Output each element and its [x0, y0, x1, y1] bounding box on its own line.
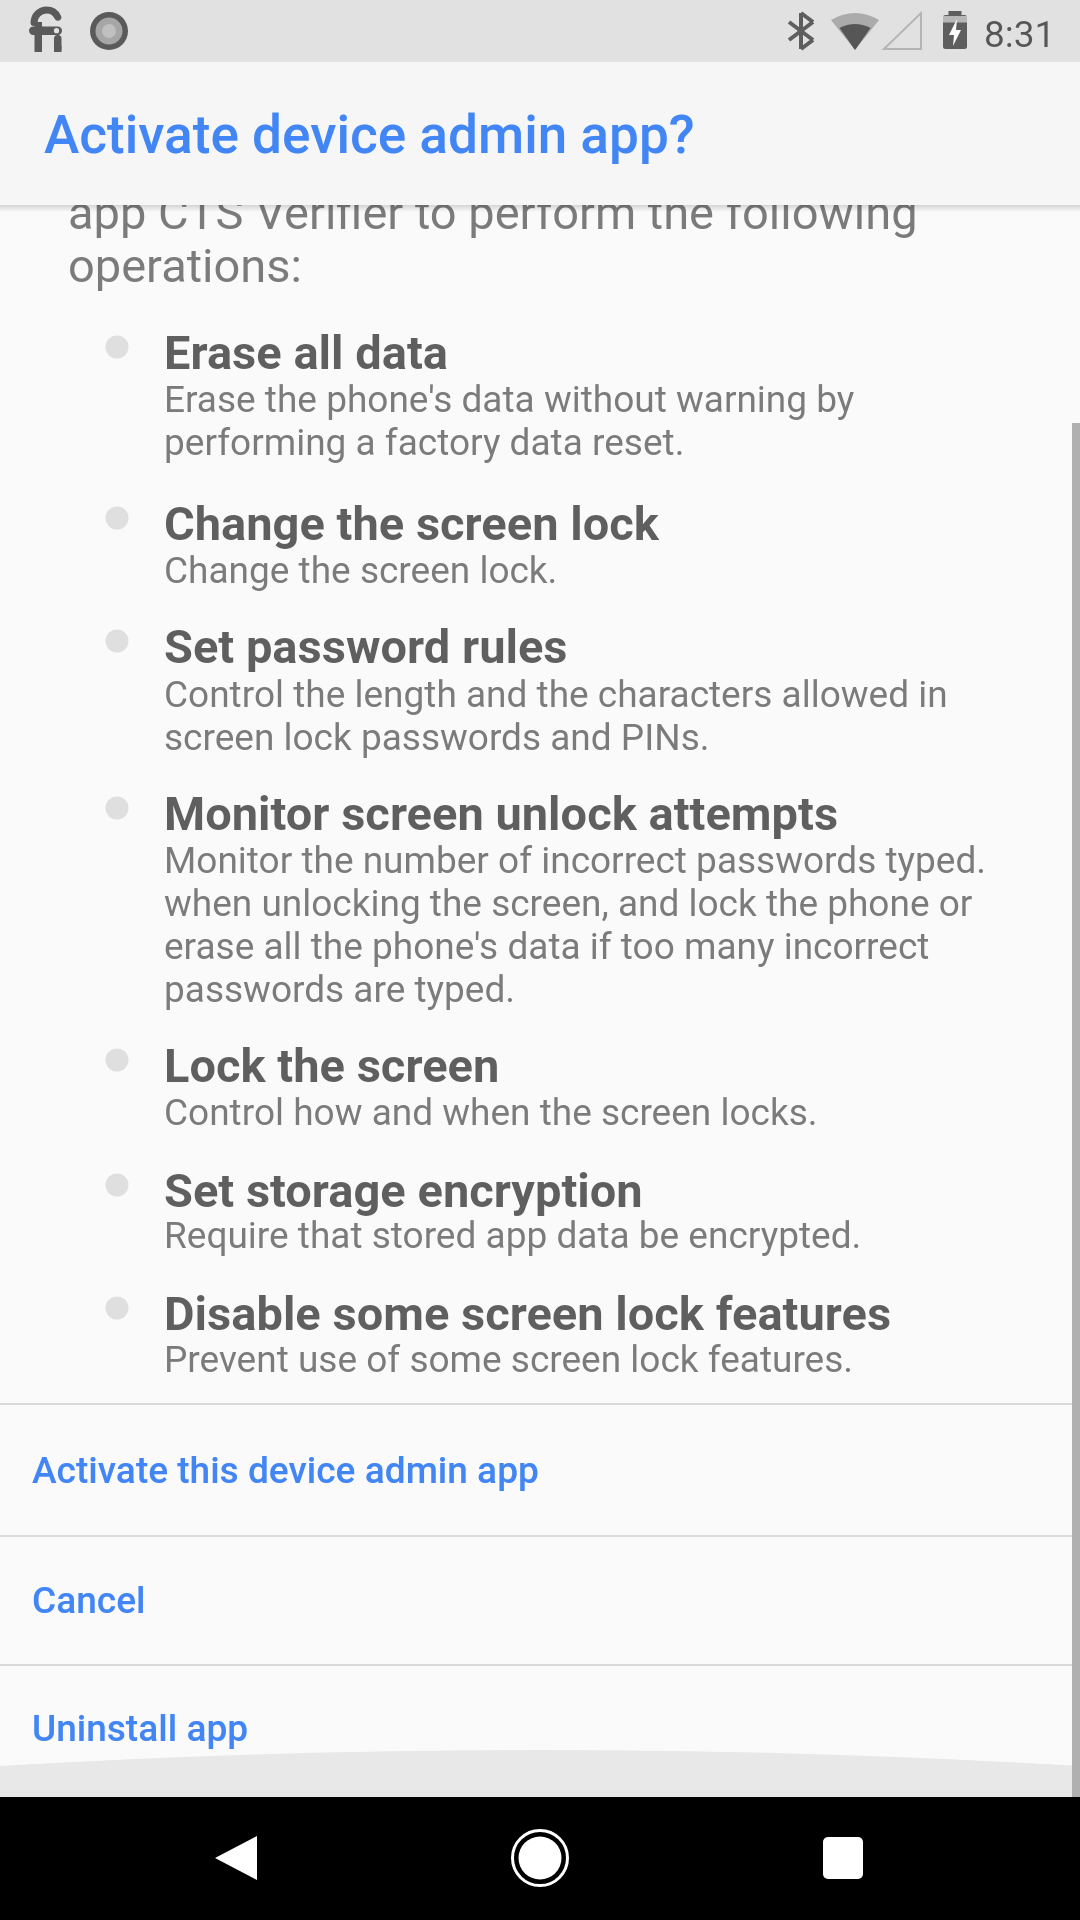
- button[interactable]: [180, 1812, 292, 1906]
- staticText: Activate this device admin app: [32, 1449, 539, 1492]
- button[interactable]: Uninstall app: [0, 1666, 1080, 1797]
- staticText: Prevent use of some screen lock features…: [164, 1338, 854, 1381]
- staticText: when unlocking the screen, and lock the …: [164, 882, 973, 925]
- staticText: Erase the phone's data without warning b…: [164, 378, 855, 421]
- staticText: Set storage encryption: [164, 1163, 643, 1218]
- staticText: app CTS Verifier to perform the followin…: [68, 185, 918, 240]
- staticText: Erase all data: [164, 325, 449, 380]
- staticText: Monitor screen unlock attempts: [164, 786, 839, 841]
- staticText: passwords are typed.: [164, 968, 516, 1011]
- staticText: Set password rules: [164, 619, 568, 674]
- staticText: Activate device admin app?: [44, 104, 695, 166]
- button[interactable]: [484, 1812, 596, 1906]
- staticText: Disable some screen lock features: [164, 1286, 892, 1341]
- staticText: Uninstall app: [32, 1707, 249, 1750]
- staticText: Monitor the number of incorrect password…: [164, 839, 987, 882]
- button[interactable]: Cancel: [0, 1537, 1080, 1664]
- staticText: Require that stored app data be encrypte…: [164, 1214, 862, 1257]
- staticText: Cancel: [32, 1579, 146, 1622]
- staticText: operations:: [68, 238, 302, 293]
- staticText: Change the screen lock: [164, 496, 659, 551]
- staticText: Change the screen lock.: [164, 549, 558, 592]
- staticText: erase all the phone's data if too many i…: [164, 925, 930, 968]
- staticText: Control the length and the characters al…: [164, 673, 948, 716]
- button[interactable]: [788, 1812, 900, 1906]
- staticText: Control how and when the screen locks.: [164, 1091, 818, 1134]
- staticText: 8:31: [984, 13, 1056, 56]
- staticText: Lock the screen: [164, 1038, 500, 1093]
- staticText: performing a factory data reset.: [164, 421, 685, 464]
- button[interactable]: Activate this device admin app: [0, 1405, 1080, 1535]
- staticText: screen lock passwords and PINs.: [164, 716, 710, 759]
